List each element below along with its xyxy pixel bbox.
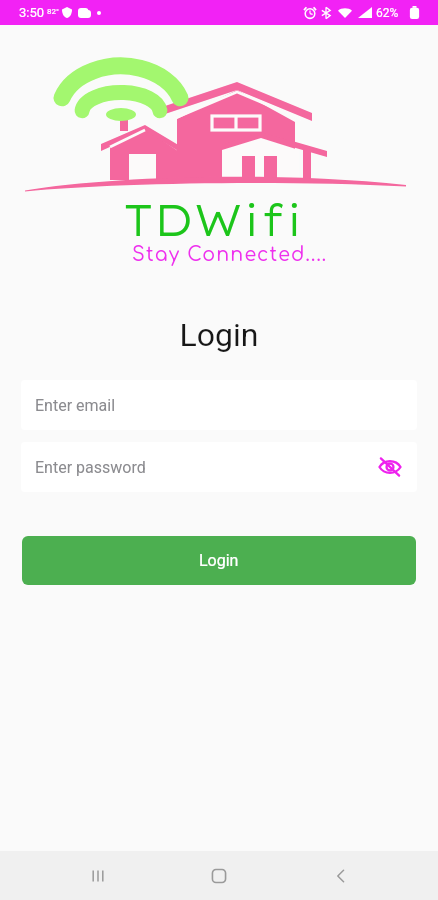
staticText: Enter email: [35, 396, 116, 415]
staticText: 3:50: [19, 5, 45, 20]
button[interactable]: Enter password: [21, 442, 417, 492]
staticText: TDWifi: [123, 192, 304, 247]
staticText: Login: [199, 551, 239, 570]
button[interactable]: Enter email: [21, 380, 417, 430]
staticText: Enter password: [35, 458, 146, 477]
staticText: Login: [0, 316, 438, 354]
button[interactable]: Login: [22, 536, 416, 585]
staticText: 62%: [376, 6, 399, 20]
staticText: 82°: [47, 7, 59, 16]
button[interactable]: Home: [195, 852, 243, 900]
button[interactable]: Recent apps: [74, 852, 122, 900]
staticText: Stay Connected....: [132, 244, 328, 265]
button[interactable]: Show password: [375, 452, 405, 482]
button[interactable]: Back: [317, 852, 365, 900]
